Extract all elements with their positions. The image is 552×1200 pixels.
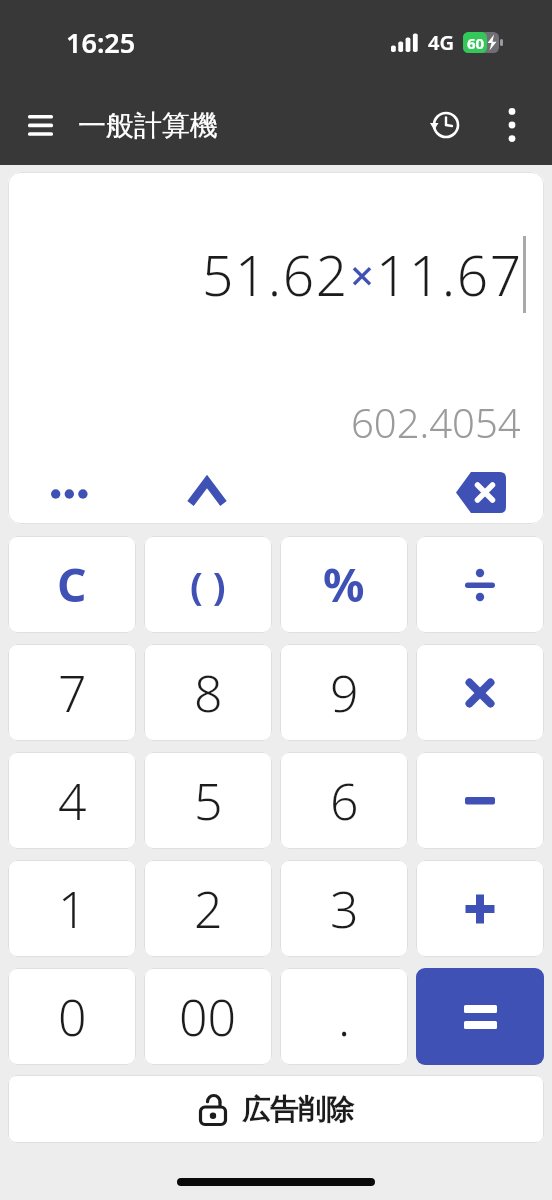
staticText: . bbox=[338, 983, 351, 1051]
staticText: 00 bbox=[179, 983, 237, 1051]
button[interactable]: 広告削除 bbox=[8, 1075, 544, 1143]
button[interactable]: 6 bbox=[280, 752, 408, 849]
button[interactable]: ( ) bbox=[144, 536, 272, 633]
staticText: 1 bbox=[58, 875, 87, 943]
staticText: ( ) bbox=[190, 559, 226, 611]
button[interactable]: C bbox=[8, 536, 136, 633]
staticText: × bbox=[350, 246, 375, 303]
button[interactable] bbox=[416, 752, 544, 849]
staticText: 4G bbox=[428, 29, 454, 56]
staticText: 4 bbox=[58, 767, 87, 835]
staticText: 0 bbox=[58, 983, 87, 1051]
button[interactable]: 0 bbox=[8, 968, 136, 1065]
button[interactable]: 5 bbox=[144, 752, 272, 849]
button[interactable] bbox=[416, 860, 544, 957]
staticText: 7 bbox=[58, 659, 87, 727]
staticText: 8 bbox=[194, 659, 223, 727]
staticText: 5 bbox=[194, 767, 223, 835]
button[interactable]: 7 bbox=[8, 644, 136, 741]
staticText: 3 bbox=[330, 875, 359, 943]
button[interactable]: 9 bbox=[280, 644, 408, 741]
button[interactable]: 1 bbox=[8, 860, 136, 957]
button[interactable]: 3 bbox=[280, 860, 408, 957]
staticText: C bbox=[57, 553, 87, 616]
button[interactable] bbox=[448, 464, 514, 520]
button[interactable] bbox=[180, 468, 234, 512]
button[interactable]: . bbox=[280, 968, 408, 1065]
button[interactable] bbox=[18, 103, 62, 147]
staticText: 602.4054 bbox=[351, 395, 521, 449]
button[interactable]: 4 bbox=[8, 752, 136, 849]
staticText: 一般計算機 bbox=[78, 108, 218, 143]
button[interactable]: 8 bbox=[144, 644, 272, 741]
staticText: 11.67 bbox=[376, 237, 523, 312]
staticText: 51.62 bbox=[202, 237, 349, 312]
staticText: 広告削除 bbox=[242, 1092, 354, 1127]
button[interactable] bbox=[38, 475, 100, 513]
button[interactable]: 2 bbox=[144, 860, 272, 957]
staticText: 9 bbox=[330, 659, 359, 727]
staticText: 16:25 bbox=[66, 24, 136, 61]
staticText: 60 bbox=[467, 33, 485, 53]
button[interactable] bbox=[416, 644, 544, 741]
button[interactable]: 00 bbox=[144, 968, 272, 1065]
button[interactable] bbox=[416, 536, 544, 633]
staticText: % bbox=[323, 553, 365, 616]
staticText: 6 bbox=[330, 767, 359, 835]
button[interactable] bbox=[423, 103, 467, 147]
button[interactable]: % bbox=[280, 536, 408, 633]
staticText: 2 bbox=[194, 875, 223, 943]
button[interactable] bbox=[490, 103, 534, 147]
button[interactable] bbox=[416, 968, 544, 1065]
